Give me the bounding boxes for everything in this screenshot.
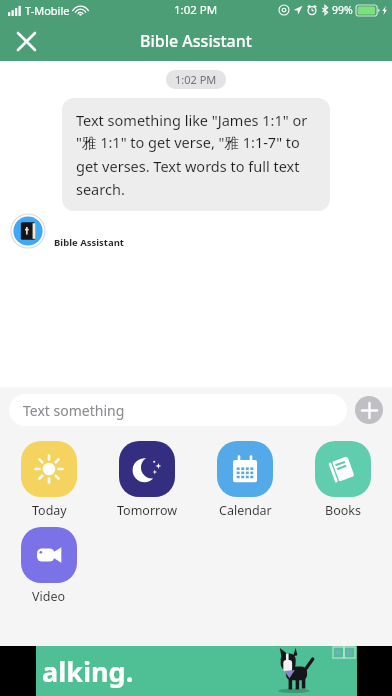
staticText: Calendar [219,502,272,519]
staticText: 99% [332,3,353,17]
staticText: Bible Assistant [54,236,124,249]
staticText: Bible Assistant [140,30,252,52]
button[interactable]: Text something like "James 1:1" or "雅 1:… [62,98,330,211]
staticText: 1:02 PM [175,72,217,87]
staticText: Text something [23,401,125,420]
button[interactable]: Text something [9,394,347,426]
staticText: Tomorrow [117,502,178,519]
button[interactable]: Today [0,439,98,521]
button[interactable]: Calendar [196,439,294,521]
staticText: Video [32,588,66,605]
button[interactable]: Close [8,23,44,59]
button[interactable]: Video [0,525,98,607]
button[interactable]: Advertisement [36,646,357,696]
staticText: Books [325,502,361,519]
button[interactable]: Add attachment [355,396,383,424]
staticText: alking. [42,653,134,690]
button[interactable]: Tomorrow [98,439,196,521]
staticText: 1:02 PM [174,2,218,18]
button[interactable]: Bible Assistant avatar [9,212,47,250]
staticText: Today [32,502,67,519]
button[interactable]: Books [294,439,392,521]
staticText: Text something like "James 1:1" or "雅 1:… [76,110,316,199]
staticText: T-Mobile [25,3,70,18]
